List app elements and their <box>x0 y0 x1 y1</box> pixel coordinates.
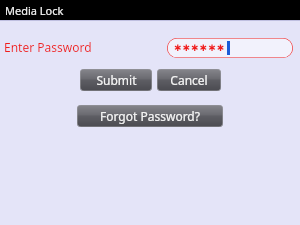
staticText: Cancel <box>170 72 208 88</box>
staticText: Enter Password <box>4 39 92 55</box>
button[interactable]: Submit <box>80 69 152 91</box>
staticText: Forgot Password? <box>100 108 200 124</box>
button[interactable]: Password input <box>167 38 293 58</box>
button[interactable]: Forgot Password? <box>77 105 223 127</box>
staticText: Media Lock <box>5 3 64 18</box>
button[interactable]: Cancel <box>157 69 221 91</box>
staticText: ✱✱✱✱✱✱ <box>174 43 226 53</box>
staticText: Submit <box>96 72 137 88</box>
